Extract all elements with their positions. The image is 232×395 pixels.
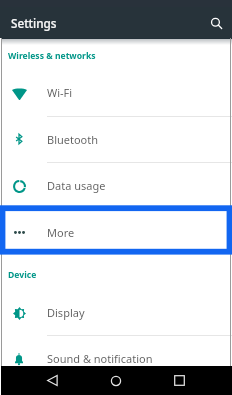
- staticText: Data usage: [47, 178, 106, 193]
- staticText: Sound & notification: [47, 351, 153, 366]
- button[interactable]: Display: [0, 290, 232, 336]
- staticText: Wi-Fi: [47, 85, 73, 100]
- button[interactable]: Recents: [169, 366, 190, 395]
- button[interactable]: Home: [105, 366, 126, 395]
- button[interactable]: Back: [42, 366, 63, 395]
- button[interactable]: Data usage: [0, 163, 232, 210]
- staticText: Display: [47, 305, 85, 320]
- staticText: Bluetooth: [47, 132, 99, 147]
- staticText: Settings: [11, 15, 57, 31]
- staticText: Wireless & networks: [8, 50, 96, 62]
- button[interactable]: Bluetooth: [0, 117, 232, 163]
- button[interactable]: Search: [200, 8, 232, 39]
- button[interactable]: More: [0, 210, 232, 256]
- staticText: Device: [8, 269, 37, 281]
- staticText: More: [47, 225, 75, 240]
- button[interactable]: Wi-Fi: [0, 70, 232, 117]
- button[interactable]: Sound & notification: [0, 336, 232, 383]
